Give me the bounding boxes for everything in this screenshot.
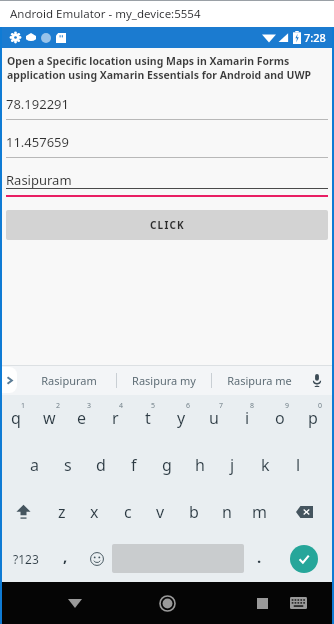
staticText: c bbox=[124, 501, 132, 523]
staticText: u bbox=[209, 407, 219, 429]
staticText: Rasipuram bbox=[41, 373, 97, 388]
button[interactable]: u bbox=[200, 395, 233, 441]
staticText: 6 bbox=[186, 401, 191, 411]
button[interactable]: e bbox=[68, 395, 101, 441]
staticText: l bbox=[296, 454, 301, 476]
staticText: t bbox=[145, 407, 151, 429]
staticText: s bbox=[64, 454, 72, 476]
staticText: a bbox=[30, 454, 39, 476]
button[interactable]: 11.457659 bbox=[6, 133, 328, 158]
button[interactable]: Switch keyboard bbox=[284, 589, 312, 617]
button[interactable]: Rasipura my bbox=[117, 365, 211, 395]
staticText: 0 bbox=[318, 401, 323, 411]
staticText: g bbox=[162, 454, 172, 476]
staticText: k bbox=[261, 454, 270, 476]
staticText: Rasipura me bbox=[227, 373, 292, 388]
button[interactable]: z bbox=[45, 488, 78, 535]
button[interactable]: l bbox=[282, 441, 315, 488]
staticText: 9 bbox=[285, 401, 290, 411]
button[interactable]: q bbox=[2, 395, 35, 441]
button[interactable]: Voice input bbox=[306, 365, 328, 395]
button[interactable]: g bbox=[150, 441, 183, 488]
button[interactable]: Back bbox=[60, 588, 90, 618]
staticText: 78.192291 bbox=[6, 95, 69, 113]
button[interactable]: Emoji bbox=[81, 535, 112, 582]
button[interactable]: f bbox=[117, 441, 150, 488]
staticText: m bbox=[252, 501, 267, 523]
button[interactable]: w bbox=[35, 395, 68, 441]
button[interactable]: k bbox=[249, 441, 282, 488]
staticText: , bbox=[63, 546, 68, 566]
staticText: w bbox=[43, 407, 56, 429]
staticText: ?123 bbox=[13, 551, 39, 567]
button[interactable]: Backspace bbox=[276, 488, 332, 535]
staticText: h bbox=[195, 454, 205, 476]
button[interactable]: p bbox=[299, 395, 332, 441]
staticText: CLICK bbox=[150, 218, 185, 232]
button[interactable]: Home bbox=[152, 588, 182, 618]
staticText: . bbox=[257, 547, 262, 567]
button[interactable]: ?123 bbox=[2, 535, 50, 582]
button[interactable]: h bbox=[183, 441, 216, 488]
staticText: f bbox=[131, 454, 137, 476]
button[interactable]: CLICK bbox=[6, 210, 328, 240]
staticText: j bbox=[230, 454, 235, 476]
button[interactable]: Rasipura me bbox=[212, 365, 306, 395]
staticText: Rasipuram bbox=[6, 171, 72, 189]
button[interactable]: t bbox=[134, 395, 167, 441]
button[interactable]: r bbox=[101, 395, 134, 441]
staticText: v bbox=[156, 501, 165, 523]
button[interactable]: j bbox=[216, 441, 249, 488]
button[interactable]: Recents bbox=[248, 589, 276, 617]
staticText: p bbox=[308, 407, 318, 429]
staticText: b bbox=[189, 501, 199, 523]
staticText: 7 bbox=[219, 401, 224, 411]
staticText: 8 bbox=[250, 401, 255, 411]
staticText: r bbox=[112, 407, 119, 429]
staticText: Open a Specific location using Maps in X… bbox=[7, 54, 327, 82]
staticText: 1 bbox=[21, 401, 26, 411]
button[interactable]: d bbox=[84, 441, 117, 488]
staticText: i bbox=[245, 407, 250, 429]
button[interactable]: b bbox=[177, 488, 210, 535]
button[interactable]: y bbox=[167, 395, 200, 441]
staticText: x bbox=[90, 501, 99, 523]
button[interactable]: x bbox=[78, 488, 111, 535]
button[interactable]: , bbox=[50, 535, 81, 582]
button[interactable]: i bbox=[233, 395, 266, 441]
button[interactable]: Shift bbox=[2, 488, 45, 535]
staticText: d bbox=[96, 454, 106, 476]
staticText: o bbox=[275, 407, 285, 429]
button[interactable]: o bbox=[266, 395, 299, 441]
button[interactable]: a bbox=[18, 441, 51, 488]
button[interactable]: m bbox=[243, 488, 276, 535]
staticText: 5 bbox=[151, 401, 156, 411]
staticText: 3 bbox=[87, 401, 92, 411]
button[interactable]: c bbox=[111, 488, 144, 535]
button[interactable]: Enter bbox=[290, 545, 318, 573]
button[interactable]: s bbox=[51, 441, 84, 488]
staticText: z bbox=[58, 501, 66, 523]
button[interactable]: Rasipuram bbox=[22, 365, 116, 395]
staticText: 11.457659 bbox=[6, 133, 69, 151]
staticText: 2 bbox=[56, 401, 61, 411]
staticText: q bbox=[11, 407, 21, 429]
staticText: n bbox=[222, 501, 232, 523]
staticText: 7:28 bbox=[304, 30, 326, 45]
button[interactable]: Rasipuram bbox=[6, 171, 328, 197]
staticText: Android Emulator - my_device:5554 bbox=[10, 6, 201, 22]
button[interactable]: 78.192291 bbox=[6, 95, 328, 120]
staticText: y bbox=[177, 407, 186, 429]
button[interactable]: n bbox=[210, 488, 243, 535]
button[interactable]: Expand suggestions bbox=[2, 367, 17, 393]
button[interactable]: . bbox=[244, 535, 275, 582]
button[interactable]: v bbox=[144, 488, 177, 535]
staticText: 4 bbox=[119, 401, 124, 411]
staticText: Rasipura my bbox=[132, 373, 196, 388]
staticText: e bbox=[77, 407, 87, 429]
